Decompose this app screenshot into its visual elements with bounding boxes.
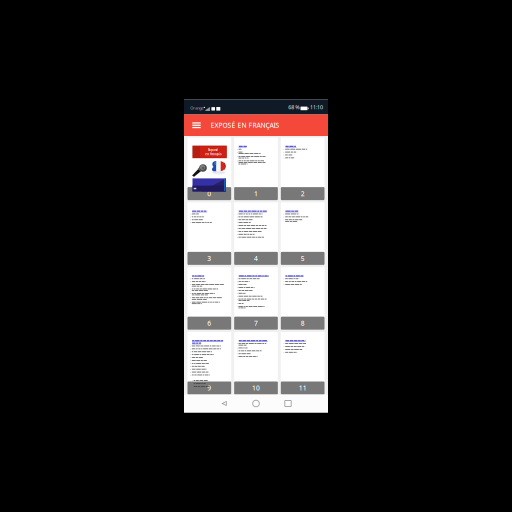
button[interactable]: 11 — [281, 332, 324, 394]
button[interactable]: 3 — [187, 202, 231, 265]
staticText: 8 — [301, 319, 305, 328]
staticText: 2 — [301, 189, 305, 198]
staticText: 5 — [301, 254, 305, 263]
button[interactable]: Home — [252, 394, 259, 412]
staticText: EXPOSÉ EN FRANÇAIS — [210, 121, 279, 130]
staticText: 3 — [207, 254, 211, 263]
button[interactable]: 6 — [187, 267, 231, 330]
staticText: Exposé — [208, 148, 218, 152]
staticText: 4 — [254, 254, 258, 263]
staticText: 68 % — [288, 104, 299, 111]
button[interactable]: 1 — [234, 138, 278, 200]
button[interactable]: 9 — [187, 332, 231, 394]
staticText: Orange — [190, 105, 203, 111]
button[interactable]: Recent apps — [284, 394, 291, 412]
staticText: 7 — [254, 319, 258, 328]
staticText: 6 — [207, 319, 211, 328]
staticText: en français — [205, 152, 221, 156]
staticText: 11:10 — [310, 104, 323, 111]
button[interactable]: 2 — [281, 138, 324, 200]
button[interactable]: 10 — [234, 332, 278, 394]
button[interactable]: 5 — [281, 202, 324, 265]
button[interactable]: 4 — [234, 202, 278, 265]
button[interactable]: Open navigation menu — [187, 114, 206, 136]
button[interactable]: 8 — [281, 267, 324, 330]
button[interactable]: 7 — [234, 267, 278, 330]
staticText: 9 — [207, 384, 211, 392]
staticText: 10 — [252, 384, 260, 392]
staticText: 11 — [299, 384, 307, 392]
staticText: 1 — [254, 189, 258, 198]
button[interactable]: Back — [220, 394, 227, 412]
staticText: 0 — [207, 189, 211, 198]
button[interactable]: Exposé — [187, 138, 231, 200]
